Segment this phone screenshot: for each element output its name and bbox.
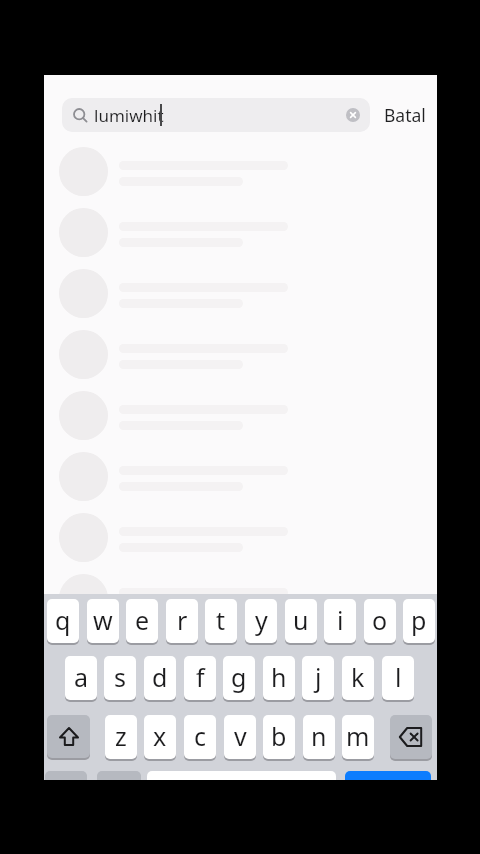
button[interactable]: m: [342, 715, 374, 759]
staticText: j: [315, 660, 322, 694]
button[interactable]: c: [184, 715, 216, 759]
button[interactable]: x: [144, 715, 176, 759]
button[interactable]: y: [245, 599, 277, 643]
staticText: t: [216, 603, 226, 637]
button[interactable]: u: [285, 599, 317, 643]
staticText: f: [196, 660, 205, 694]
button[interactable]: s: [104, 656, 136, 700]
button[interactable]: o: [364, 599, 396, 643]
button[interactable]: k: [342, 656, 374, 700]
button[interactable]: a: [65, 656, 97, 700]
button[interactable]: e: [126, 599, 158, 643]
button[interactable]: p: [403, 599, 435, 643]
button[interactable]: l: [382, 656, 414, 700]
button[interactable]: [345, 771, 431, 780]
staticText: g: [231, 660, 247, 694]
button[interactable]: g: [223, 656, 255, 700]
button[interactable]: Batal: [378, 98, 432, 132]
staticText: w: [93, 603, 113, 637]
button[interactable]: z: [105, 715, 137, 759]
staticText: s: [114, 660, 126, 694]
staticText: z: [115, 719, 127, 753]
staticText: n: [311, 719, 327, 753]
button[interactable]: [97, 771, 141, 780]
button[interactable]: lumiwhit: [62, 98, 370, 132]
button[interactable]: t: [205, 599, 237, 643]
button[interactable]: d: [144, 656, 176, 700]
staticText: e: [135, 603, 150, 637]
staticText: m: [346, 719, 370, 753]
button[interactable]: w: [87, 599, 119, 643]
button[interactable]: j: [302, 656, 334, 700]
staticText: i: [337, 603, 344, 637]
button[interactable]: q: [47, 599, 79, 643]
staticText: Batal: [384, 103, 426, 127]
staticText: h: [271, 660, 287, 694]
button[interactable]: f: [184, 656, 216, 700]
staticText: v: [234, 719, 247, 753]
staticText: c: [194, 719, 207, 753]
staticText: r: [177, 603, 188, 637]
staticText: d: [152, 660, 168, 694]
button[interactable]: [346, 108, 360, 122]
staticText: a: [74, 660, 89, 694]
staticText: p: [411, 603, 427, 637]
button[interactable]: [147, 771, 336, 780]
staticText: k: [351, 660, 365, 694]
button[interactable]: r: [166, 599, 198, 643]
button[interactable]: i: [324, 599, 356, 643]
staticText: x: [153, 719, 167, 753]
button[interactable]: b: [263, 715, 295, 759]
staticText: b: [271, 719, 287, 753]
staticText: l: [395, 660, 402, 694]
button[interactable]: [45, 771, 87, 780]
button[interactable]: v: [224, 715, 256, 759]
button[interactable]: [390, 715, 432, 759]
button[interactable]: [47, 715, 90, 758]
staticText: q: [55, 603, 71, 637]
staticText: u: [293, 603, 309, 637]
staticText: lumiwhit: [94, 104, 164, 127]
staticText: y: [255, 603, 268, 637]
staticText: o: [372, 603, 388, 637]
button[interactable]: n: [303, 715, 335, 759]
button[interactable]: h: [263, 656, 295, 700]
